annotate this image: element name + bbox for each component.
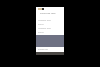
staticText: Another line: [38, 27, 51, 30]
staticText: Some title here: [40, 12, 56, 15]
staticText: Short: [38, 31, 44, 34]
staticText: Footer txt: [38, 48, 49, 51]
staticText: Another line: [38, 19, 51, 22]
staticText: Short: [38, 23, 44, 26]
